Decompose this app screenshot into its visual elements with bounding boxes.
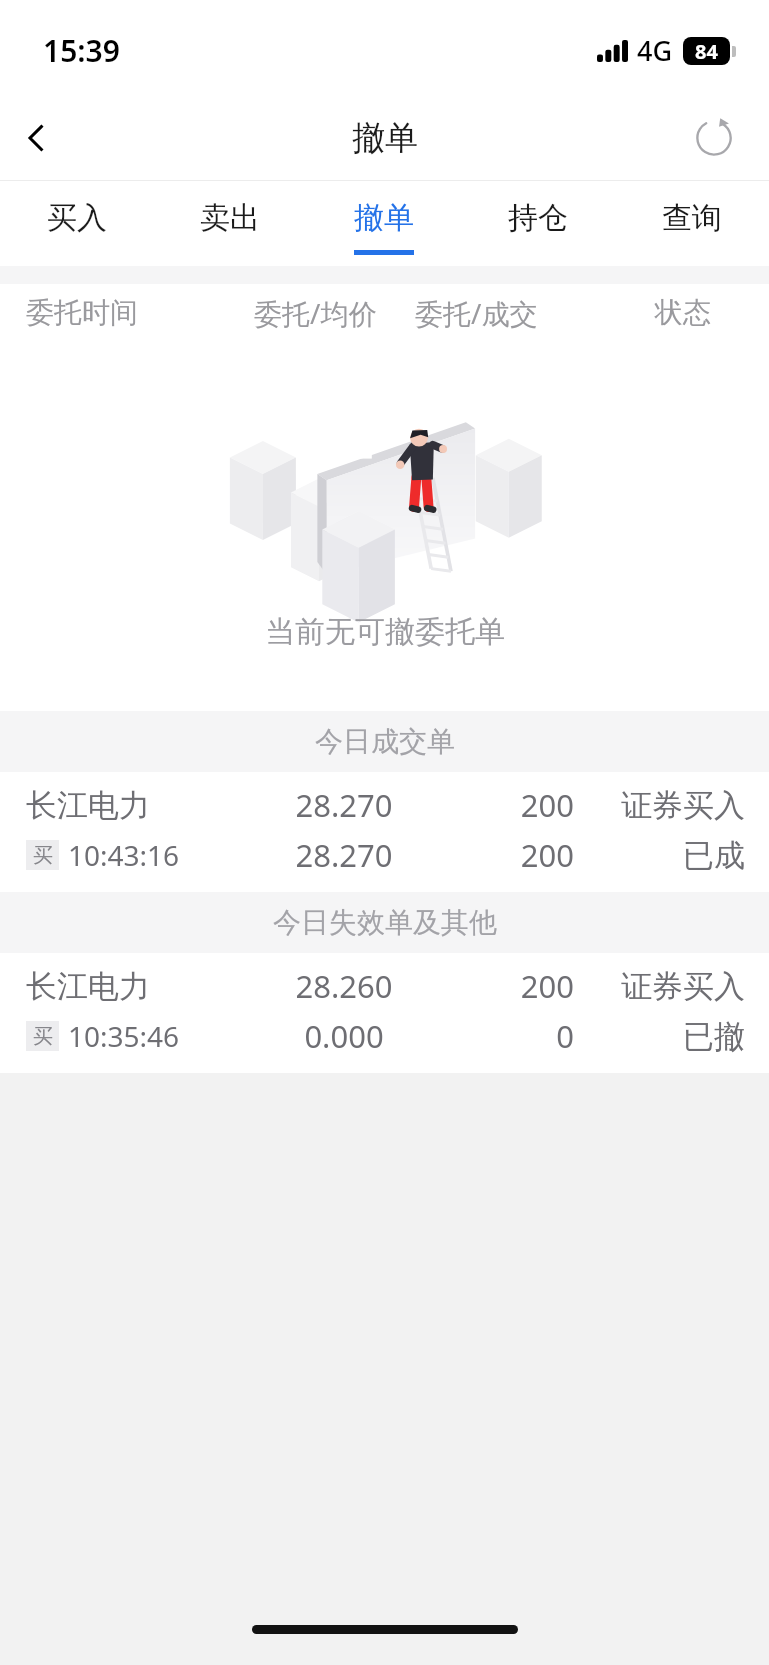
button[interactable]: Refresh <box>681 105 747 171</box>
staticText: 28.270 <box>246 784 442 826</box>
staticText: 0 <box>442 1015 574 1057</box>
staticText: 买 <box>33 1024 53 1049</box>
staticText: 28.260 <box>246 965 442 1007</box>
staticText: 状态 <box>655 295 711 330</box>
button[interactable]: 持仓 <box>461 181 615 266</box>
staticText: 撤单 <box>354 199 414 237</box>
staticText: 已撤 <box>574 1017 745 1056</box>
button[interactable]: 买入 <box>0 181 153 266</box>
staticText: 卖出 <box>200 199 260 237</box>
button[interactable]: 长江电力 <box>0 772 769 892</box>
staticText: 持仓 <box>508 199 568 237</box>
staticText: 4G <box>637 32 673 69</box>
staticText: 10:43:16 <box>68 836 180 874</box>
staticText: 200 <box>442 784 574 826</box>
staticText: 委托/均价 <box>254 294 377 332</box>
staticText: 已成 <box>574 836 745 875</box>
staticText: 今日成交单 <box>315 724 455 759</box>
staticText: 买入 <box>47 199 107 237</box>
button[interactable]: 卖出 <box>153 181 307 266</box>
button[interactable]: 查询 <box>615 181 769 266</box>
staticText: 0.000 <box>246 1015 442 1057</box>
staticText: 撤单 <box>352 117 418 159</box>
staticText: 长江电力 <box>26 967 246 1006</box>
staticText: 委托/成交 <box>415 294 538 332</box>
button[interactable]: 长江电力 <box>0 953 769 1073</box>
button[interactable]: 撤单 <box>307 181 461 266</box>
staticText: 证券买入 <box>574 786 745 825</box>
staticText: 买 <box>33 843 53 868</box>
staticText: 委托时间 <box>26 295 138 330</box>
button[interactable]: Back <box>0 102 72 174</box>
staticText: 200 <box>442 965 574 1007</box>
staticText: 当前无可撤委托单 <box>265 613 505 651</box>
staticText: 84 <box>695 38 718 65</box>
staticText: 200 <box>442 834 574 876</box>
staticText: 10:35:46 <box>68 1017 180 1055</box>
staticText: 15:39 <box>43 30 120 71</box>
staticText: 今日失效单及其他 <box>273 905 497 940</box>
staticText: 28.270 <box>246 834 442 876</box>
staticText: 证券买入 <box>574 967 745 1006</box>
staticText: 长江电力 <box>26 786 246 825</box>
staticText: 查询 <box>662 199 722 237</box>
